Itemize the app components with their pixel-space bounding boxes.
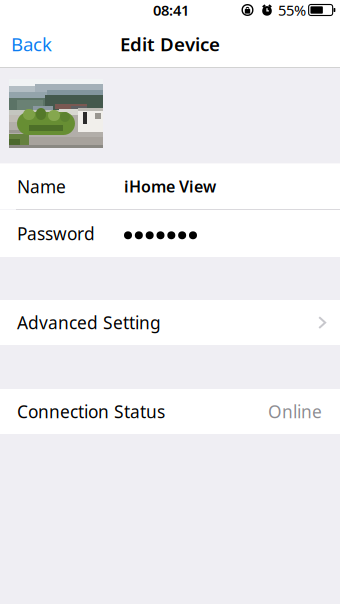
staticText: iHome View (124, 176, 216, 197)
staticText: 08:41 (153, 0, 189, 20)
staticText: 55% (278, 0, 306, 20)
staticText: Online (268, 400, 322, 423)
staticText: Connection Status (17, 400, 165, 423)
staticText: Edit Device (120, 32, 220, 56)
staticText: Password (17, 222, 95, 245)
button[interactable]: Back (0, 24, 62, 64)
staticText: Back (11, 32, 52, 56)
staticText: Advanced Setting (17, 311, 161, 334)
button[interactable]: Advanced Setting (0, 300, 340, 345)
staticText: Name (17, 175, 66, 198)
